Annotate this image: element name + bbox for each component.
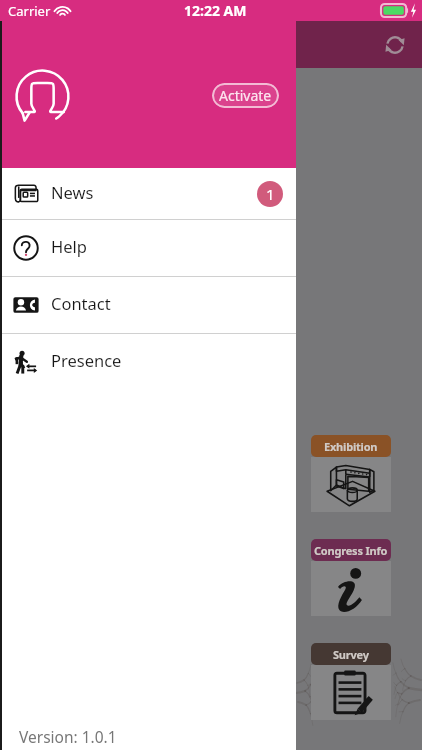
button[interactable]: Help: [0, 220, 296, 276]
staticText: Congress Info: [314, 543, 388, 558]
staticText: Carrier: [8, 2, 51, 20]
button[interactable]: News: [0, 168, 296, 219]
staticText: News: [51, 181, 94, 203]
button[interactable]: Congress Info: [311, 539, 391, 616]
button[interactable]: Presence: [0, 334, 296, 390]
staticText: Exhibition: [324, 439, 378, 454]
staticText: Version: 1.0.1: [19, 726, 117, 747]
button[interactable]: Activate: [212, 83, 279, 108]
button[interactable]: Exhibition: [311, 435, 391, 512]
button[interactable]: Contact: [0, 277, 296, 333]
staticText: Activate: [219, 86, 272, 105]
staticText: Contact: [51, 292, 111, 314]
staticText: Survey: [333, 647, 369, 662]
staticText: 1: [266, 184, 275, 204]
button[interactable]: Refresh: [381, 31, 409, 59]
staticText: 12:22 AM: [184, 1, 247, 20]
staticText: Presence: [51, 349, 122, 371]
button[interactable]: Survey: [311, 643, 391, 720]
staticText: Help: [51, 235, 87, 257]
